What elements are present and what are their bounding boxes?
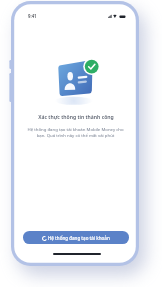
staticText: 9:41 — [28, 13, 37, 19]
staticText: Hệ thống đang tạo tài khoản Mobile Money… — [24, 126, 127, 138]
staticText: Hệ thống đang tạo tài khoản — [48, 235, 110, 241]
button[interactable]: Hệ thống đang tạo tài khoản — [23, 231, 129, 244]
staticText: Xác thực thông tin thành công — [38, 114, 114, 121]
